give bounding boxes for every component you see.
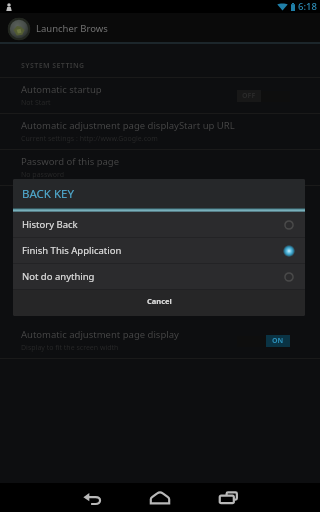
staticText: Not Start — [21, 98, 51, 108]
staticText: OFF — [242, 91, 256, 101]
staticText: Automatic adjustment page display — [21, 328, 179, 341]
staticText: Finish This Application — [22, 244, 282, 257]
staticText: History Back — [22, 218, 282, 231]
staticText: Not do anything — [22, 270, 282, 283]
staticText: Password of this page — [21, 155, 120, 168]
staticText: No password — [21, 170, 65, 180]
staticText: ON — [272, 336, 284, 346]
button[interactable]: Cancel — [13, 290, 305, 316]
button[interactable]: Recents — [194, 483, 262, 512]
button[interactable]: Finish This Application — [13, 238, 305, 263]
button[interactable]: Automatic startup — [0, 78, 320, 113]
staticText: Automatic startup — [21, 83, 102, 96]
button[interactable]: Password of this page — [0, 150, 320, 185]
staticText: Current settings : http://www.Google.com — [21, 134, 158, 144]
button[interactable]: Automatic adjustment page display — [0, 323, 320, 358]
staticText: Display to fit the screen width — [21, 343, 119, 353]
staticText: Launcher Brows — [36, 22, 108, 35]
staticText: 6:18 — [298, 0, 317, 13]
staticText: SYSTEM SETTING — [21, 61, 85, 71]
button[interactable]: Back — [58, 483, 126, 512]
staticText: Automatic adjustment page displayStart u… — [21, 119, 235, 132]
button[interactable]: On — [237, 334, 290, 348]
button[interactable]: Home — [126, 483, 194, 512]
button[interactable]: History Back — [13, 212, 305, 237]
button[interactable]: Off — [237, 89, 290, 103]
button[interactable]: Automatic adjustment page displayStart u… — [0, 114, 320, 149]
staticText: BACK KEY — [22, 186, 74, 202]
staticText: Cancel — [147, 296, 172, 306]
button[interactable]: Not do anything — [13, 264, 305, 289]
